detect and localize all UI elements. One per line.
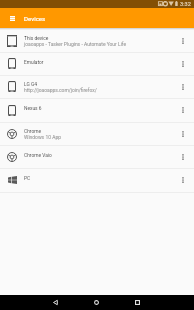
button[interactable]: Recent apps bbox=[127, 295, 148, 310]
button[interactable]: Chrome bbox=[0, 123, 194, 146]
button[interactable]: Emulator bbox=[0, 53, 194, 76]
staticText: Devices bbox=[24, 15, 46, 22]
button[interactable]: More options bbox=[172, 76, 194, 99]
staticText: PC bbox=[24, 176, 31, 182]
staticText: 3:32 bbox=[180, 1, 191, 8]
staticText: Chrome Vaio bbox=[24, 153, 52, 159]
button[interactable]: Open navigation menu bbox=[0, 8, 24, 28]
button[interactable]: Nexus 6 bbox=[0, 99, 194, 123]
button[interactable]: More options bbox=[172, 146, 194, 169]
staticText: http://joaoapps.com/join/firefox/ bbox=[24, 87, 97, 93]
button[interactable]: More options bbox=[172, 53, 194, 76]
button[interactable]: PC bbox=[0, 169, 194, 193]
staticText: Nexus 6 bbox=[24, 106, 42, 112]
staticText: Windows 10 App bbox=[24, 134, 61, 140]
button[interactable]: More options bbox=[172, 123, 194, 146]
button[interactable]: LG G4 bbox=[0, 76, 194, 99]
staticText: Emulator bbox=[24, 60, 44, 66]
button[interactable]: This device bbox=[0, 30, 194, 53]
staticText: LG G4 bbox=[24, 82, 37, 88]
button[interactable]: More options bbox=[172, 30, 194, 53]
button[interactable]: More options bbox=[172, 169, 194, 193]
button[interactable]: Home bbox=[86, 295, 107, 310]
button[interactable]: More options bbox=[172, 99, 194, 123]
staticText: This device bbox=[24, 36, 49, 42]
staticText: Chrome bbox=[24, 129, 41, 135]
button[interactable]: Chrome Vaio bbox=[0, 146, 194, 169]
button[interactable]: Back bbox=[45, 295, 66, 310]
staticText: joaoapps - Tasker Plugins - Automate You… bbox=[24, 41, 127, 47]
